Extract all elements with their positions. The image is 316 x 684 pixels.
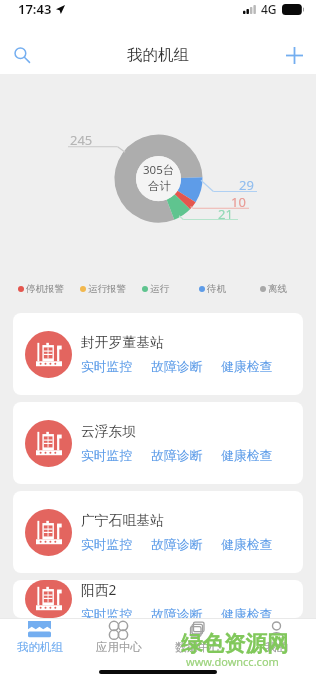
- button[interactable]: 待机: [199, 283, 226, 295]
- staticText: 停机报警: [26, 283, 64, 295]
- button[interactable]: 实时监控: [81, 359, 133, 375]
- staticText: 云浮东坝: [81, 423, 137, 440]
- staticText: 245: [70, 131, 93, 149]
- button[interactable]: 数据中心: [158, 621, 237, 654]
- staticText: 合计: [148, 179, 171, 193]
- button[interactable]: 广宁石咀基站: [13, 491, 303, 573]
- button[interactable]: 实时监控: [81, 448, 133, 464]
- button[interactable]: 阳西2: [13, 580, 303, 618]
- staticText: 广宁石咀基站: [81, 512, 164, 529]
- staticText: 21: [218, 205, 233, 223]
- staticText: www.downcc.com: [186, 654, 279, 669]
- staticText: 10: [231, 193, 246, 211]
- staticText: 29: [239, 176, 254, 194]
- button[interactable]: 停机报警: [18, 283, 64, 295]
- button[interactable]: 故障诊断: [151, 537, 203, 553]
- button[interactable]: 故障诊断: [151, 607, 203, 618]
- button[interactable]: Add: [275, 36, 313, 74]
- button[interactable]: 离线: [260, 283, 287, 295]
- staticText: 运行: [150, 283, 169, 295]
- button[interactable]: 健康检查: [221, 448, 273, 464]
- staticText: 阳西2: [81, 580, 117, 599]
- button[interactable]: 云浮东坝: [13, 402, 303, 484]
- staticText: 离线: [268, 283, 287, 295]
- staticText: 数据中心: [175, 640, 221, 654]
- button[interactable]: 健康检查: [221, 359, 273, 375]
- button[interactable]: 运行报警: [80, 283, 126, 295]
- staticText: 我的机组: [17, 640, 63, 654]
- staticText: 我的: [265, 640, 288, 654]
- staticText: 待机: [207, 283, 226, 295]
- button[interactable]: 封开罗董基站: [13, 313, 303, 395]
- button[interactable]: 健康检查: [221, 537, 273, 553]
- staticText: 封开罗董基站: [81, 334, 164, 351]
- button[interactable]: 实时监控: [81, 537, 133, 553]
- staticText: 305台: [143, 162, 175, 178]
- staticText: 我的机组: [127, 45, 189, 65]
- button[interactable]: 我的机组: [0, 621, 79, 654]
- button[interactable]: 应用中心: [79, 621, 158, 654]
- staticText: 4G: [261, 1, 277, 17]
- button[interactable]: 健康检查: [221, 607, 273, 618]
- staticText: 运行报警: [88, 283, 126, 295]
- staticText: 17:43: [18, 0, 52, 18]
- button[interactable]: 故障诊断: [151, 359, 203, 375]
- staticText: 绿色资源网: [181, 630, 289, 657]
- staticText: 应用中心: [96, 640, 142, 654]
- button[interactable]: Search: [3, 36, 41, 74]
- button[interactable]: 实时监控: [81, 607, 133, 618]
- button[interactable]: 故障诊断: [151, 448, 203, 464]
- button[interactable]: 运行: [142, 283, 169, 295]
- button[interactable]: 我的: [237, 621, 316, 654]
